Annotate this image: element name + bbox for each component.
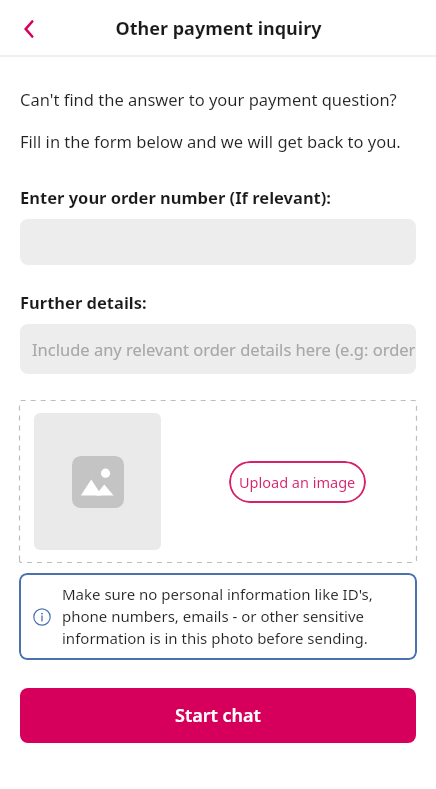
button[interactable]: Start chat [20, 688, 416, 743]
button[interactable]: Back [0, 1, 56, 57]
button[interactable]: Include any relevant order details here … [20, 324, 416, 374]
staticText: Enter your order number (If relevant): [20, 186, 331, 208]
staticText: Can't find the answer to your payment qu… [20, 88, 397, 110]
staticText: Other payment inquiry [115, 16, 322, 41]
other: Information [33, 608, 51, 626]
staticText: Start chat [175, 703, 261, 728]
staticText: Further details: [20, 291, 147, 313]
staticText: Include any relevant order details here … [32, 338, 416, 360]
staticText: Make sure no personal information like I… [62, 584, 403, 649]
button[interactable]: Information [19, 573, 417, 660]
button[interactable]: Upload an image [229, 461, 366, 503]
staticText: Fill in the form below and we will get b… [20, 130, 401, 152]
staticText: Upload an image [239, 472, 356, 492]
